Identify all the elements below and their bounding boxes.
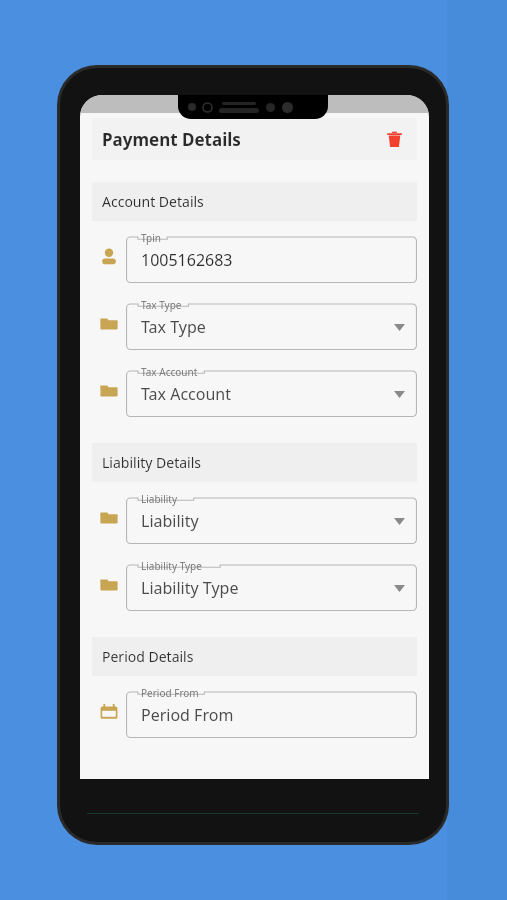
staticText: Period From (141, 686, 199, 700)
staticText: Tax Account (141, 383, 232, 405)
staticText: Payment Details (102, 128, 241, 151)
staticText: Tpin (141, 231, 161, 245)
staticText: Liability (141, 510, 199, 532)
button[interactable]: Period Details (92, 637, 417, 676)
button[interactable]: Liability Type (92, 557, 417, 613)
staticText: Tax Type (141, 298, 182, 312)
staticText: Tax Account (141, 365, 198, 379)
staticText: 1005162683 (141, 249, 233, 271)
staticText: Liability Details (102, 453, 202, 472)
button[interactable]: Account Details (92, 182, 417, 221)
staticText: Liability (141, 492, 178, 506)
button[interactable]: Liability (92, 490, 417, 546)
staticText: Liability Type (141, 577, 239, 599)
staticText: Period Details (102, 647, 194, 666)
button[interactable]: Liability Details (92, 443, 417, 482)
button[interactable]: Payment Details (92, 118, 417, 160)
staticText: Account Details (102, 192, 204, 211)
button[interactable]: Delete (381, 126, 407, 152)
button[interactable]: Period From (92, 684, 417, 740)
staticText: Liability Type (141, 559, 202, 573)
button[interactable]: Tax Account (92, 363, 417, 419)
button[interactable]: Tax Type (92, 296, 417, 352)
staticText: Tax Type (141, 316, 206, 338)
button[interactable]: Tpin (92, 229, 417, 285)
staticText: Period From (141, 704, 234, 726)
